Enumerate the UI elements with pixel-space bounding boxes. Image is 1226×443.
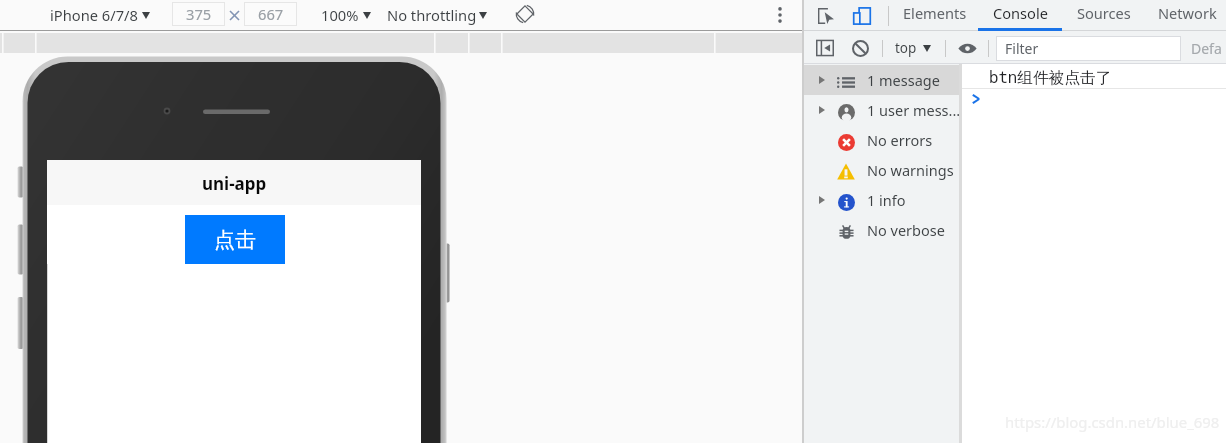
button[interactable]: Rotate xyxy=(513,2,537,26)
button[interactable]: No warnings xyxy=(804,155,959,185)
button[interactable]: top xyxy=(895,35,931,61)
button[interactable]: Console xyxy=(978,0,1062,32)
button[interactable]: Network xyxy=(1145,0,1226,32)
staticText: Filter xyxy=(1005,39,1039,58)
staticText: 1 user mess... xyxy=(867,100,959,120)
staticText: Console xyxy=(993,3,1048,23)
button[interactable]: More options xyxy=(768,3,792,27)
staticText: No throttling xyxy=(387,5,477,25)
staticText: uni-app xyxy=(202,172,267,195)
staticText: 100% xyxy=(321,5,359,25)
staticText: 667 xyxy=(258,4,284,24)
button[interactable]: 点击 xyxy=(185,215,285,264)
button[interactable]: 1 user mess... xyxy=(804,95,959,125)
staticText: btn组件被点击了 xyxy=(989,66,1112,87)
staticText: Elements xyxy=(903,3,967,23)
button[interactable]: Show console sidebar xyxy=(813,36,837,60)
button[interactable]: No verbose xyxy=(804,215,959,245)
button[interactable]: Filter xyxy=(996,36,1181,61)
button[interactable]: iPhone 6/7/8 xyxy=(45,3,155,27)
staticText: Defa xyxy=(1191,39,1222,58)
button[interactable]: Toggle device toolbar xyxy=(849,3,875,29)
button[interactable]: Inspect element xyxy=(813,3,839,29)
staticText: top xyxy=(895,39,917,57)
staticText: iPhone 6/7/8 xyxy=(50,5,138,25)
button[interactable]: Elements xyxy=(889,0,981,32)
staticText: No verbose xyxy=(867,220,945,240)
button[interactable]: Clear console xyxy=(849,37,871,59)
staticText: 375 xyxy=(186,4,212,24)
staticText: https://blog.csdn.net/blue_698 xyxy=(1005,412,1220,432)
button[interactable]: 100% xyxy=(316,3,376,27)
button[interactable]: No errors xyxy=(804,125,959,155)
staticText: 1 info xyxy=(867,190,906,210)
staticText: 1 message xyxy=(867,70,940,90)
staticText: Network xyxy=(1158,3,1217,23)
button[interactable]: No throttling xyxy=(382,3,492,27)
staticText: Sources xyxy=(1077,3,1131,23)
staticText: 点击 xyxy=(214,227,256,253)
button[interactable]: 375 xyxy=(172,2,225,26)
button[interactable]: Console settings xyxy=(956,37,978,59)
staticText: No warnings xyxy=(867,160,954,180)
button[interactable]: 1 info xyxy=(804,185,959,215)
button[interactable]: 667 xyxy=(244,2,297,26)
button[interactable]: Sources xyxy=(1062,0,1145,32)
button[interactable]: 1 message xyxy=(804,65,959,95)
staticText: No errors xyxy=(867,130,933,150)
